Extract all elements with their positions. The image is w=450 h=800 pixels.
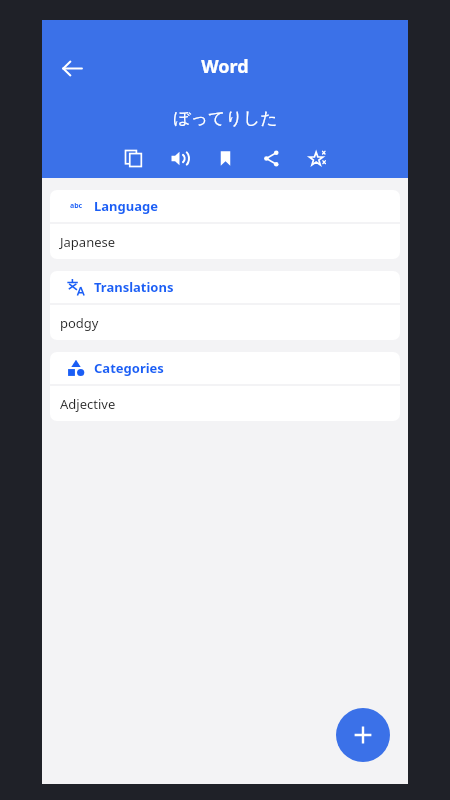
button[interactable]: abc [50, 190, 400, 222]
button[interactable]: Translations [50, 271, 400, 303]
button[interactable]: Japanese [50, 224, 400, 259]
button[interactable]: Share [255, 142, 287, 174]
staticText: Japanese [60, 233, 116, 251]
button[interactable]: Pronounce [163, 142, 195, 174]
staticText: Language [94, 197, 158, 215]
button[interactable]: Bookmark [209, 142, 241, 174]
staticText: abc [70, 201, 83, 211]
staticText: podgy [60, 314, 99, 332]
button[interactable]: podgy [50, 305, 400, 340]
staticText: Translations [94, 278, 174, 296]
button[interactable]: Favourite [301, 142, 333, 174]
button[interactable]: Back [52, 48, 92, 88]
button[interactable]: Copy [117, 142, 149, 174]
staticText: Adjective [60, 395, 116, 413]
staticText: Categories [94, 359, 164, 377]
button[interactable]: Adjective [50, 386, 400, 421]
staticText: Word [201, 54, 249, 79]
staticText: ぼってりした [173, 108, 278, 129]
button[interactable]: Add word [336, 708, 390, 762]
button[interactable]: Categories [50, 352, 400, 384]
